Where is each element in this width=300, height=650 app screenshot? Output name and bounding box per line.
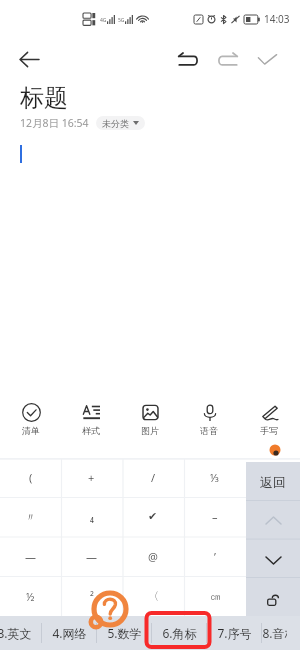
staticText: 返回 [260,474,286,490]
button[interactable]: 手写 [241,386,297,452]
button[interactable]: 未分类 [96,116,145,130]
button[interactable]: 样式 [63,386,119,452]
button[interactable]: ’ [184,536,246,576]
button[interactable]: Back [12,42,47,77]
button[interactable]: 4.网络 [42,616,96,650]
staticText: ½ [26,589,35,604]
staticText: ⅓ [210,470,220,485]
button[interactable]: ✔ [122,497,184,536]
button[interactable]: — [0,536,61,576]
staticText: 5.数学 [107,625,142,641]
staticText: @ [148,549,158,564]
staticText: ✔ [148,510,158,523]
button[interactable]: 语音 [181,386,237,452]
button[interactable]: Page up [246,501,300,540]
staticText: 清单 [22,425,40,436]
staticText: 语音 [200,425,218,436]
button[interactable]: — [61,536,122,576]
button[interactable]: ㎝ [184,576,246,616]
button[interactable]: 8.音标 [262,616,287,650]
button[interactable]: 〃 [0,497,61,536]
button[interactable]: ½ [0,576,61,616]
staticText: ( [29,470,33,485]
staticText: ² [90,589,94,604]
button[interactable]: Page down [246,540,300,580]
staticText: 未分类 [102,118,129,129]
button[interactable]: 3.英文 [0,616,41,650]
staticText: 〃 [25,510,36,524]
staticText: 5G [118,17,125,24]
button[interactable]: Done [251,43,283,75]
staticText: ’ [214,549,216,564]
staticText: 8.音标 [262,625,287,641]
staticText: 3.英文 [0,625,32,641]
staticText: — [86,549,97,564]
button[interactable]: 清单 [3,386,59,452]
button[interactable]: 〈 [122,576,184,616]
staticText: + [88,470,95,485]
button[interactable]: – [184,497,246,536]
button[interactable]: Lock [246,580,300,620]
button[interactable]: + [61,458,122,497]
button[interactable]: ₄ [61,497,122,536]
button[interactable]: Undo [172,43,204,75]
staticText: 14:03 [264,12,290,26]
staticText: — [25,549,36,564]
button[interactable]: 5.数学 [97,616,151,650]
staticText: 标题 [20,83,68,113]
staticText: 7.序号 [217,625,252,641]
staticText: 6.角标 [162,625,197,641]
staticText: 4.网络 [52,625,87,641]
staticText: 12月8日 16:54 [20,116,89,130]
staticText: 〈 [148,589,159,603]
button[interactable]: ( [0,458,61,497]
button[interactable]: @ [122,536,184,576]
staticText: ㎝ [210,589,221,603]
button[interactable]: 6.角标 [152,616,206,650]
button[interactable]: 7.序号 [207,616,261,650]
staticText: / [151,470,156,485]
staticText: 手写 [260,425,278,436]
button[interactable]: / [122,458,184,497]
staticText: – [212,509,218,524]
button[interactable]: Redo [211,43,243,75]
staticText: ₄ [90,509,94,524]
staticText: 样式 [82,425,100,436]
staticText: 图片 [141,425,159,436]
button[interactable]: ² [61,576,122,616]
button[interactable]: 图片 [122,386,178,452]
button[interactable]: ⅓ [184,458,246,497]
button[interactable]: 返回 [246,462,300,501]
staticText: 4G [100,17,107,24]
